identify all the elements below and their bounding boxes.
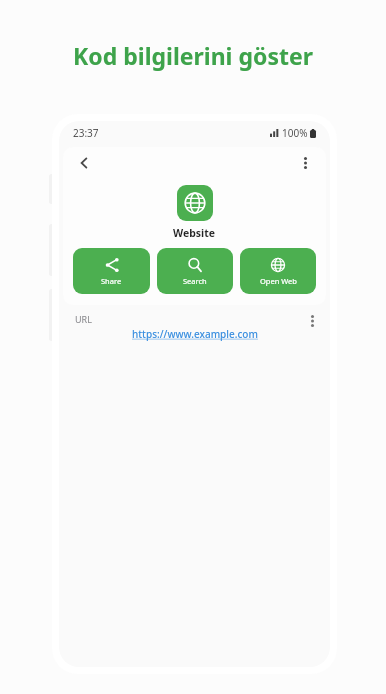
button[interactable]: Website icon	[177, 185, 213, 221]
staticText: Website	[173, 226, 216, 240]
staticText: https://www.example.com	[132, 327, 258, 341]
staticText: Open Web	[260, 276, 297, 286]
staticText: Search	[183, 276, 207, 286]
button[interactable]: Share	[73, 248, 150, 294]
button[interactable]: Search	[157, 248, 233, 294]
staticText: 100%	[282, 126, 308, 140]
button[interactable]: URL	[59, 305, 330, 349]
button[interactable]: Open Web	[240, 248, 316, 294]
staticText: Share	[101, 276, 122, 286]
staticText: URL	[75, 313, 92, 325]
staticText: 23:37	[73, 126, 99, 140]
staticText: Kod bilgilerini göster	[0, 40, 386, 71]
button[interactable]: Back	[73, 152, 95, 174]
button[interactable]: More options	[294, 152, 316, 174]
button[interactable]: URL options	[302, 311, 322, 331]
